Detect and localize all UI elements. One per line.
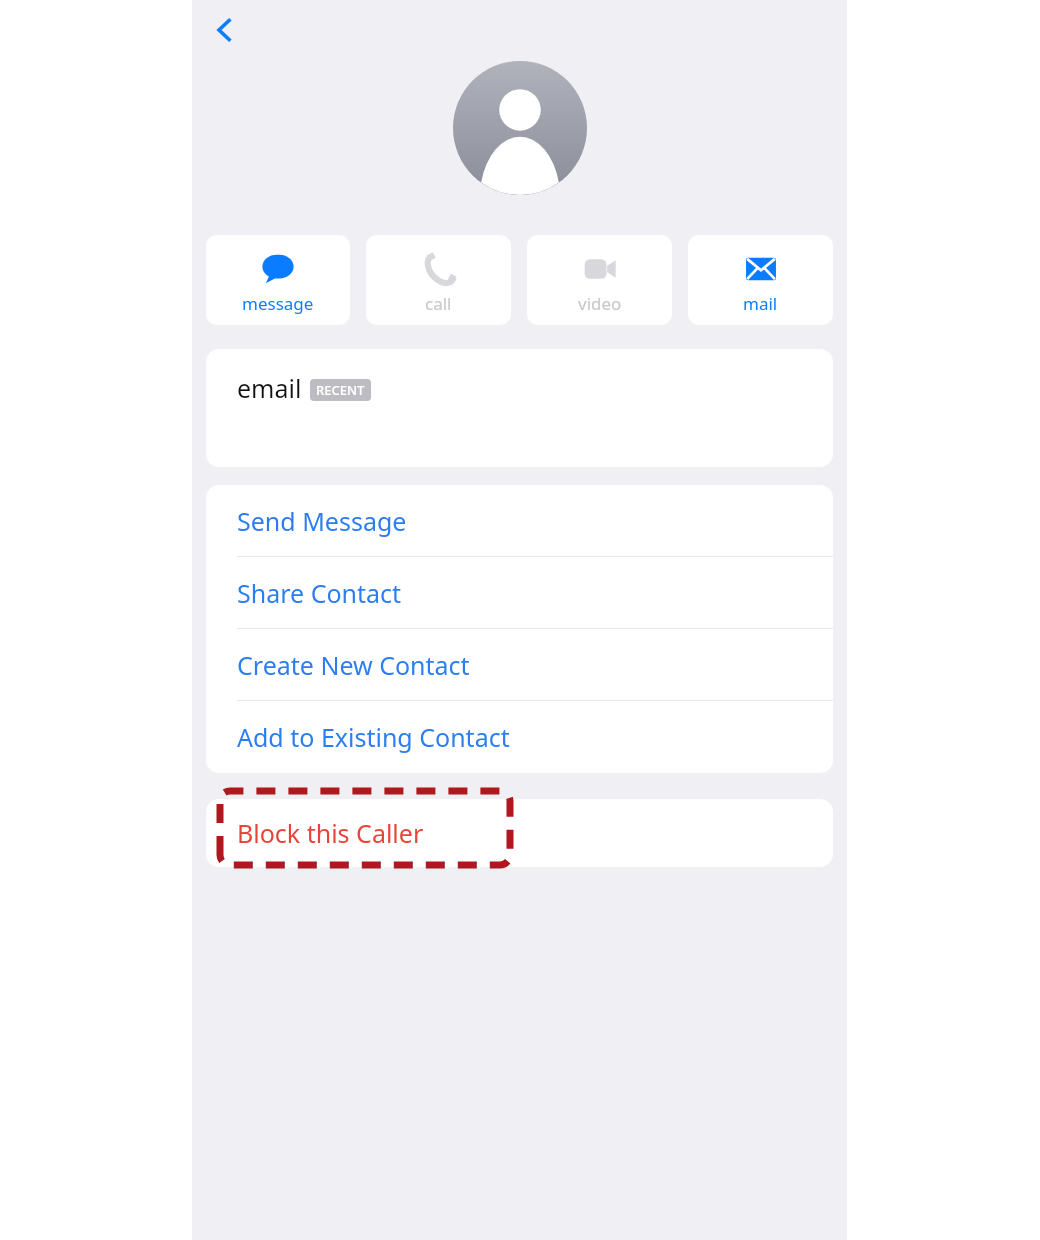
button[interactable]: email — [206, 349, 833, 467]
staticText: call — [425, 292, 452, 315]
staticText: video — [578, 292, 622, 315]
button[interactable]: Send Message — [206, 485, 833, 557]
staticText: Add to Existing Contact — [237, 720, 510, 754]
button[interactable]: Create New Contact — [206, 629, 833, 701]
staticText: Block this Caller — [237, 816, 424, 850]
staticText: email — [237, 371, 302, 405]
button[interactable]: Back — [198, 3, 252, 57]
staticText: Create New Contact — [237, 648, 470, 682]
staticText: message — [242, 292, 314, 315]
staticText: Send Message — [237, 504, 407, 538]
button[interactable]: Block this Caller — [206, 799, 833, 867]
button[interactable]: video — [527, 235, 672, 325]
staticText: mail — [743, 292, 778, 315]
button[interactable]: call — [366, 235, 511, 325]
staticText: RECENT — [316, 381, 365, 399]
button[interactable]: Share Contact — [206, 557, 833, 629]
button[interactable]: message — [206, 235, 350, 325]
staticText: Share Contact — [237, 576, 402, 610]
button[interactable]: Add to Existing Contact — [206, 701, 833, 773]
button[interactable]: mail — [688, 235, 833, 325]
